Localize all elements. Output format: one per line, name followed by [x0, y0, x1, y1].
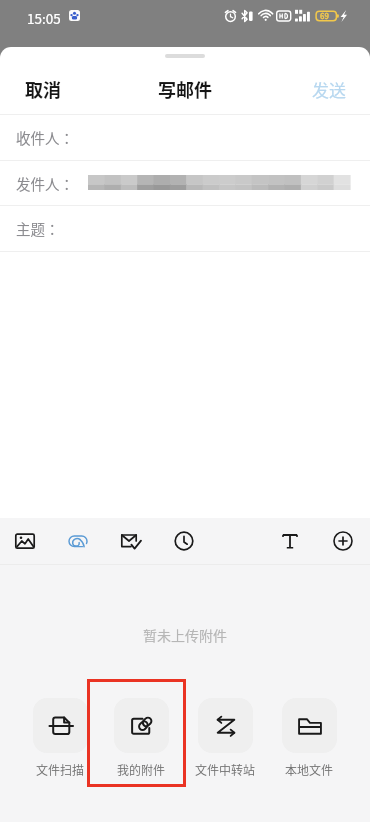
button[interactable]: 主题： — [16, 206, 370, 251]
button[interactable]: 发送 — [312, 77, 346, 102]
button[interactable] — [198, 698, 253, 753]
staticText: 15:05 — [27, 8, 61, 28]
button[interactable]: Schedule send — [172, 529, 196, 553]
staticText: 主题： — [16, 218, 60, 239]
button[interactable]: Mail template — [119, 529, 143, 553]
staticText: 文件中转站 — [195, 761, 256, 778]
button[interactable]: More options — [331, 529, 355, 553]
staticText: 取消 — [25, 76, 61, 102]
staticText: 我的附件 — [117, 761, 166, 778]
button[interactable]: Text format — [278, 529, 302, 553]
staticText: 文件扫描 — [36, 761, 85, 778]
button[interactable] — [33, 698, 88, 753]
staticText: 发送 — [312, 77, 346, 102]
staticText: 收件人： — [16, 127, 74, 148]
staticText: 69 — [320, 10, 329, 22]
staticText: 发件人： — [16, 173, 74, 194]
button[interactable] — [114, 698, 169, 753]
button[interactable] — [282, 698, 337, 753]
button[interactable]: Insert image — [13, 529, 37, 553]
button[interactable]: Attachment — [66, 529, 90, 553]
button[interactable]: 取消 — [25, 76, 61, 102]
button[interactable]: 收件人： — [16, 115, 370, 160]
staticText: 写邮件 — [158, 76, 212, 102]
staticText: 暂未上传附件 — [143, 625, 227, 645]
button[interactable]: 发件人： — [16, 161, 370, 206]
staticText: 本地文件 — [285, 761, 334, 778]
